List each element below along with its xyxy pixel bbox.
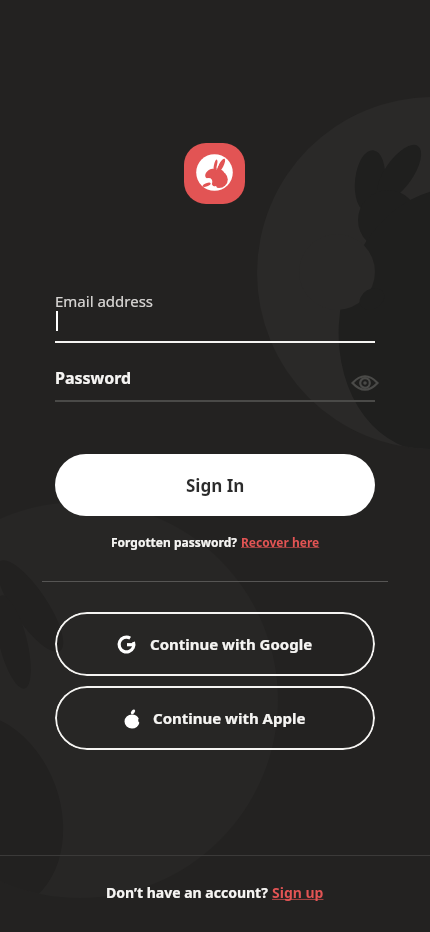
staticText: Email address — [55, 291, 154, 311]
staticText: Sign In — [186, 474, 245, 497]
button[interactable]: Sign In — [55, 454, 375, 516]
staticText: Forgotten password? — [111, 534, 241, 550]
staticText: Continue with Apple — [153, 708, 306, 728]
staticText: Password — [55, 367, 132, 389]
button[interactable]: Continue with Google — [55, 612, 375, 676]
staticText: Continue with Google — [150, 634, 313, 654]
button[interactable]: Recover here — [241, 534, 320, 550]
button[interactable]: Continue with Apple — [55, 686, 375, 750]
button[interactable]: Sign up — [272, 883, 324, 902]
staticText: Don’t have an account? — [106, 883, 272, 902]
